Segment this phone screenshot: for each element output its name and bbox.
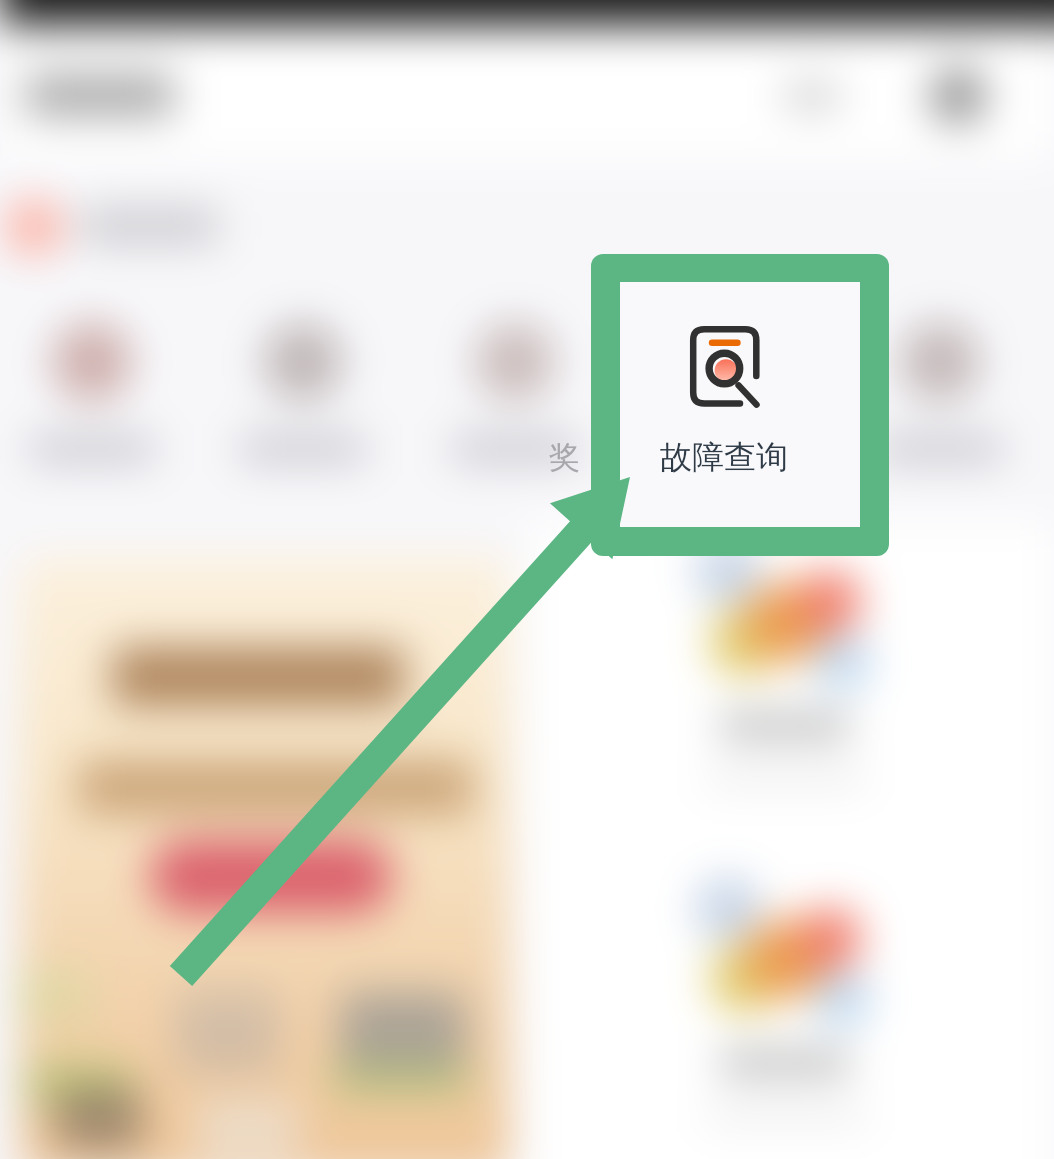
button[interactable] [453, 436, 577, 462]
button[interactable] [620, 282, 860, 527]
button[interactable] [80, 209, 218, 243]
button[interactable] [663, 436, 787, 462]
button[interactable] [26, 74, 174, 116]
button[interactable] [150, 840, 392, 913]
button[interactable]: Profile [930, 68, 986, 124]
button[interactable] [241, 436, 365, 462]
button[interactable] [20, 556, 510, 1159]
button[interactable] [878, 436, 1002, 462]
button[interactable] [30, 436, 154, 462]
staticText: 奖 [549, 438, 580, 477]
staticText: 故障查询 [660, 437, 788, 477]
